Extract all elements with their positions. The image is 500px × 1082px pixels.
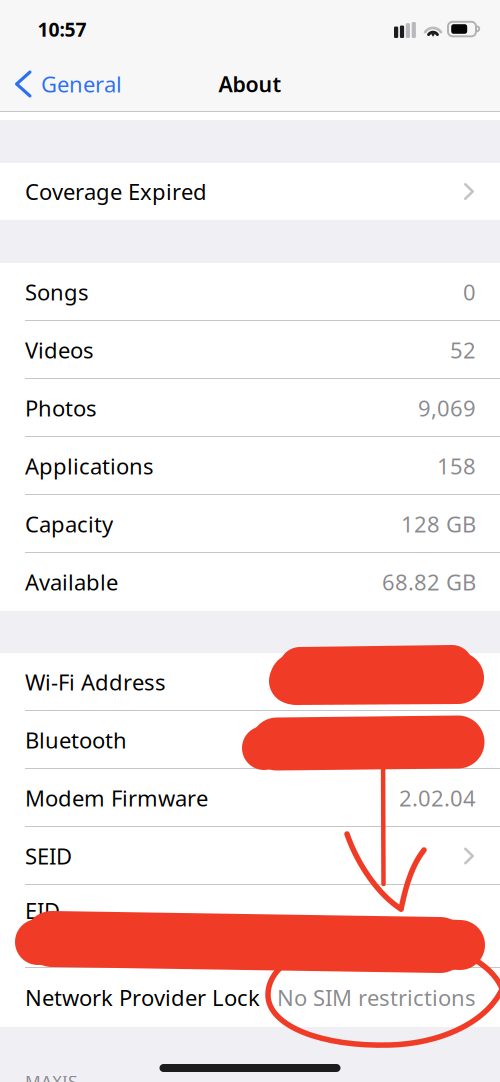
staticText: General	[41, 69, 122, 99]
staticText: Photos	[25, 393, 97, 423]
staticText: SEID	[25, 841, 72, 871]
button[interactable]: Bluetooth	[0, 711, 500, 769]
staticText: 52	[450, 335, 476, 365]
button[interactable]: EID	[0, 885, 500, 968]
staticText: Bluetooth	[25, 725, 127, 755]
staticText: About	[218, 70, 281, 98]
staticText: Videos	[25, 335, 94, 365]
staticText: No SIM restrictions	[277, 982, 476, 1012]
staticText: 158	[437, 451, 476, 481]
staticText: Wi-Fi Address	[25, 667, 166, 697]
staticText: Modem Firmware	[25, 783, 208, 813]
button[interactable]: Songs	[0, 263, 500, 321]
button[interactable]: Videos	[0, 321, 500, 379]
button[interactable]: Capacity	[0, 495, 500, 553]
button[interactable]: SEID	[0, 827, 500, 885]
staticText: 2.02.04	[399, 783, 476, 813]
staticText: 0	[463, 277, 476, 307]
staticText: 128 GB	[401, 509, 476, 539]
staticText: 68.82 GB	[382, 567, 476, 597]
button[interactable]: Photos	[0, 379, 500, 437]
staticText: 10:57	[37, 16, 86, 42]
button[interactable]: Applications	[0, 437, 500, 495]
button[interactable]: Coverage Expired	[0, 163, 500, 220]
button[interactable]: Back to General	[0, 56, 130, 112]
button[interactable]: Modem Firmware	[0, 769, 500, 827]
staticText: EID	[25, 895, 60, 925]
staticText: MAXIS	[25, 1070, 78, 1082]
staticText: Capacity	[25, 509, 113, 539]
staticText: Songs	[25, 277, 89, 307]
staticText: 9,069	[418, 393, 476, 423]
button[interactable]: Available	[0, 553, 500, 611]
button[interactable]: Network Provider Lock	[0, 968, 500, 1027]
staticText: Available	[25, 567, 118, 597]
button[interactable]: Wi-Fi Address	[0, 653, 500, 711]
staticText: Coverage Expired	[25, 176, 207, 206]
staticText: Applications	[25, 451, 154, 481]
staticText: Network Provider Lock	[25, 982, 260, 1012]
